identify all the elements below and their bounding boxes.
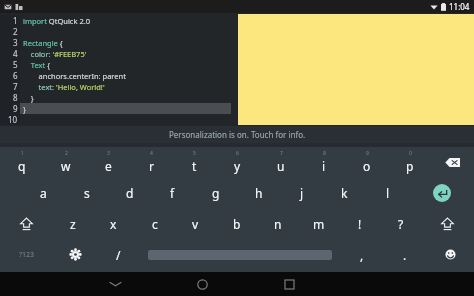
staticText: Text {	[23, 60, 50, 70]
staticText: g	[212, 185, 220, 201]
staticText: 10	[8, 114, 18, 125]
staticText: x	[110, 216, 117, 232]
staticText: }	[23, 104, 26, 114]
button[interactable]: Shift	[421, 208, 474, 239]
button[interactable]: z	[52, 208, 93, 239]
staticText: h	[255, 185, 263, 201]
staticText: 11:04	[449, 1, 470, 12]
button[interactable]: d	[108, 177, 151, 208]
button[interactable]: Personalization is on. Touch for info.	[0, 126, 474, 143]
staticText: q	[18, 158, 26, 174]
button[interactable]: ?123	[0, 239, 53, 270]
staticText: 8	[13, 92, 18, 103]
staticText: 9	[366, 150, 369, 157]
button[interactable]: !	[339, 208, 380, 239]
button[interactable]: a	[22, 177, 65, 208]
staticText: 5	[13, 59, 18, 70]
staticText: 7	[13, 81, 18, 92]
staticText: 6	[13, 70, 18, 81]
staticText: o	[363, 158, 371, 174]
staticText: 4	[13, 48, 18, 59]
button[interactable]: Hide keyboard	[87, 272, 143, 296]
staticText: 7	[280, 150, 283, 157]
button[interactable]: n	[257, 208, 298, 239]
staticText: l	[386, 185, 390, 201]
button[interactable]: /	[97, 239, 140, 270]
button[interactable]: ?	[380, 208, 421, 239]
staticText: r	[149, 158, 154, 174]
staticText: w	[61, 158, 71, 174]
staticText: t	[192, 158, 197, 174]
button[interactable]: Home	[174, 272, 230, 296]
staticText: b	[233, 216, 241, 232]
button[interactable]: f	[151, 177, 194, 208]
staticText: ?123	[19, 250, 35, 260]
staticText: d	[126, 185, 134, 201]
button[interactable]: 7	[259, 147, 302, 177]
staticText: import QtQuick 2.0	[23, 16, 90, 26]
button[interactable]: 4	[130, 147, 173, 177]
button[interactable]: s	[65, 177, 108, 208]
staticText: c	[152, 216, 158, 232]
button[interactable]: Enter	[433, 184, 451, 202]
staticText: z	[70, 216, 76, 232]
staticText: n	[274, 216, 282, 232]
staticText: 6	[236, 150, 239, 157]
button[interactable]: 1	[0, 147, 44, 177]
staticText: j	[300, 185, 304, 201]
staticText: y	[234, 158, 241, 174]
button[interactable]: .	[383, 239, 426, 270]
staticText: /	[116, 247, 121, 263]
button[interactable]: Settings	[53, 239, 97, 270]
staticText: k	[341, 185, 348, 201]
button[interactable]: Shift	[0, 208, 52, 239]
staticText: p	[406, 158, 414, 174]
button[interactable]: g	[194, 177, 237, 208]
button[interactable]: c	[134, 208, 175, 239]
button[interactable]: Delete	[431, 147, 474, 177]
button[interactable]: x	[93, 208, 134, 239]
button[interactable]: 5	[173, 147, 216, 177]
button[interactable]: v	[175, 208, 216, 239]
staticText: 5	[193, 150, 196, 157]
button[interactable]: 6	[216, 147, 259, 177]
button[interactable]: Emoji	[426, 239, 474, 270]
staticText: s	[84, 185, 90, 201]
button[interactable]: 9	[345, 147, 388, 177]
button[interactable]: 0	[388, 147, 431, 177]
staticText: 2	[65, 150, 68, 157]
staticText: 1	[13, 15, 18, 26]
staticText: }	[23, 93, 34, 103]
button[interactable]: h	[237, 177, 280, 208]
staticText: 9	[13, 103, 18, 114]
button[interactable]: m	[298, 208, 339, 239]
staticText: m	[313, 216, 325, 232]
staticText: anchors.centerIn: parent	[23, 71, 126, 81]
staticText: 4	[150, 150, 153, 157]
staticText: a	[40, 185, 47, 201]
button[interactable]: b	[216, 208, 257, 239]
staticText: i	[322, 158, 326, 174]
staticText: ?	[398, 216, 404, 232]
button[interactable]: ,	[340, 239, 383, 270]
staticText: 3	[13, 37, 18, 48]
button[interactable]: l	[366, 177, 409, 208]
staticText: 1	[21, 150, 24, 157]
staticText: .	[403, 247, 407, 263]
button[interactable]: 8	[302, 147, 345, 177]
button[interactable]: j	[280, 177, 323, 208]
button[interactable]: 1	[0, 13, 237, 126]
staticText: ,	[360, 247, 364, 263]
staticText: 3	[107, 150, 110, 157]
staticText: 2	[13, 26, 18, 37]
button[interactable]: Recents	[261, 272, 317, 296]
staticText: color: '#FEEB75'	[23, 49, 87, 59]
button[interactable]: 2	[44, 147, 87, 177]
staticText: u	[277, 158, 285, 174]
staticText: 8	[323, 150, 326, 157]
button[interactable]: k	[323, 177, 366, 208]
staticText: 0	[409, 150, 412, 157]
button[interactable]: 3	[87, 147, 130, 177]
